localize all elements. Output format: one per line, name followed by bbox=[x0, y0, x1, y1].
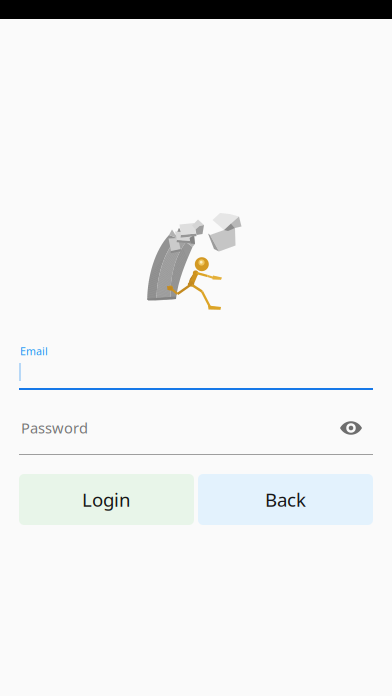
staticText: Email bbox=[20, 344, 48, 358]
staticText: Back bbox=[265, 487, 306, 512]
staticText: Password bbox=[21, 418, 88, 437]
button[interactable]: Login bbox=[19, 474, 194, 525]
button[interactable]: Email bbox=[19, 344, 373, 392]
button[interactable]: Password bbox=[19, 414, 337, 456]
button[interactable]: Back bbox=[198, 474, 373, 525]
button[interactable]: Show password bbox=[335, 415, 367, 441]
staticText: Login bbox=[82, 487, 131, 512]
